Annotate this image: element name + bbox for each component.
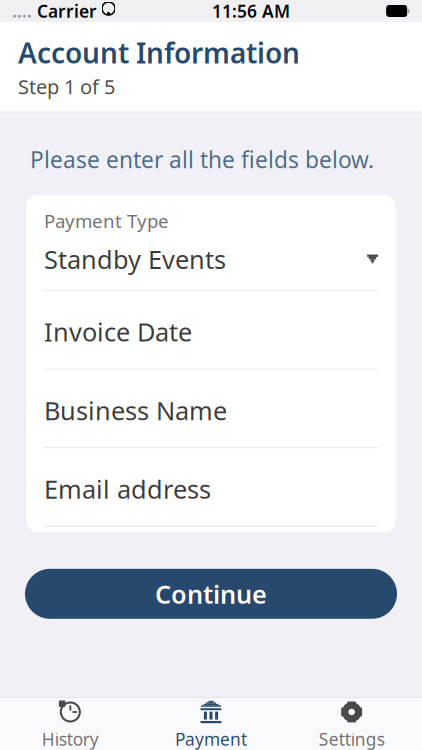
staticText: Carrier xyxy=(32,0,97,22)
staticText: Step 1 of 5 xyxy=(18,73,115,100)
staticText: .... xyxy=(12,0,32,22)
button[interactable]: Invoice Date xyxy=(26,291,396,368)
staticText: Payment Type xyxy=(44,208,169,233)
button[interactable]: Email address xyxy=(26,448,396,526)
staticText: Account Information xyxy=(18,34,300,71)
staticText: Please enter all the fields below. xyxy=(30,144,374,174)
staticText: Standby Events xyxy=(44,242,226,276)
button[interactable]: Payment xyxy=(141,693,281,750)
staticText: Continue xyxy=(155,577,267,611)
staticText: Payment xyxy=(175,727,247,750)
button[interactable]: History xyxy=(0,693,141,750)
button[interactable]: Continue xyxy=(25,569,397,619)
staticText: History xyxy=(42,727,99,750)
button[interactable]: Payment Type xyxy=(26,194,396,290)
staticText: Email address xyxy=(44,472,211,506)
staticText: Invoice Date xyxy=(44,315,192,348)
button[interactable]: Settings xyxy=(281,693,422,750)
staticText: Settings xyxy=(319,727,385,750)
button[interactable]: Business Name xyxy=(26,369,396,447)
staticText: 11:56 AM xyxy=(212,0,290,22)
staticText: Business Name xyxy=(44,393,227,427)
